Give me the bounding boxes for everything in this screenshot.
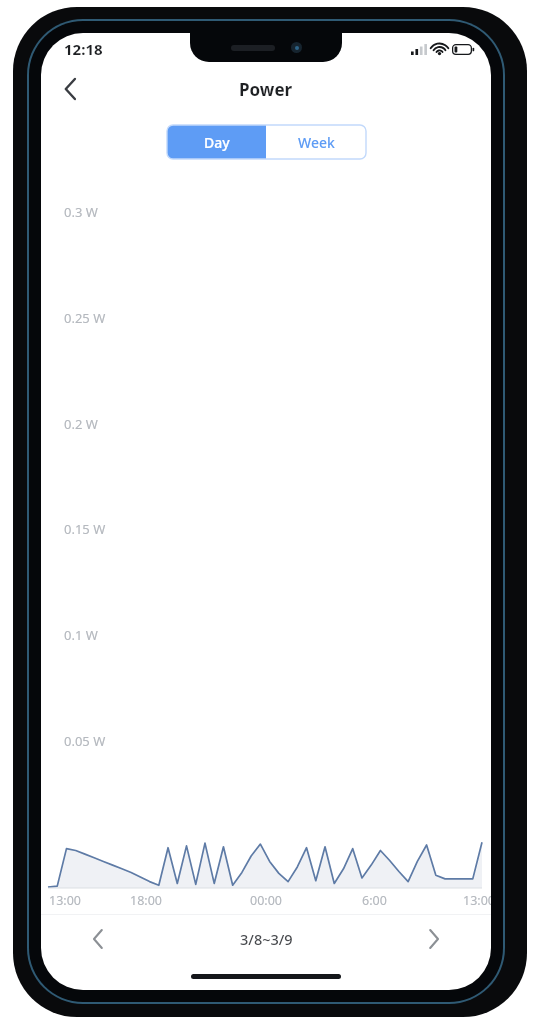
button[interactable]: Back <box>48 67 92 111</box>
staticText: 0.1 W <box>64 626 98 644</box>
staticText: 0.15 W <box>64 520 106 538</box>
staticText: 0.3 W <box>64 203 98 221</box>
staticText: 00:00 <box>250 892 282 909</box>
staticText: Week <box>298 133 335 152</box>
staticText: 0.25 W <box>64 309 106 327</box>
staticText: 13:00 <box>49 892 81 909</box>
button[interactable]: Next period <box>413 918 455 960</box>
button[interactable]: Week <box>266 125 366 159</box>
staticText: 6:00 <box>362 892 387 909</box>
staticText: 0.05 W <box>64 732 106 750</box>
staticText: 12:18 <box>64 39 103 59</box>
staticText: 3/8~3/9 <box>240 929 293 949</box>
staticText: 13:00 <box>463 892 491 909</box>
staticText: Day <box>204 133 230 152</box>
staticText: Power <box>239 78 293 101</box>
button[interactable]: Previous period <box>77 918 119 960</box>
staticText: 0.2 W <box>64 415 98 433</box>
button[interactable]: Day <box>167 125 266 159</box>
staticText: 18:00 <box>130 892 162 909</box>
